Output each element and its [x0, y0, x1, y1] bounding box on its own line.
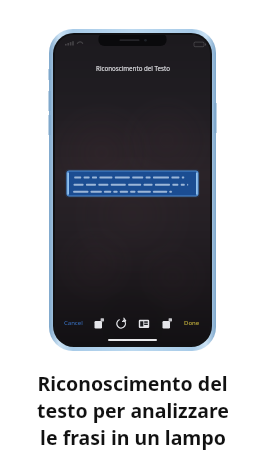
button[interactable]: Testo riconosciuto selezionato: [67, 171, 198, 196]
button[interactable]: Layout: [136, 315, 152, 331]
staticText: Done: [184, 319, 200, 327]
staticText: testo per analizzare: [37, 397, 229, 424]
button[interactable]: Ruota: [113, 315, 129, 331]
staticText: Riconoscimento del Testo: [96, 64, 170, 72]
button[interactable]: Flash: [91, 315, 107, 331]
staticText: Cancel: [64, 319, 83, 327]
button[interactable]: Cancel: [62, 317, 85, 329]
button[interactable]: Done: [182, 317, 202, 329]
button[interactable]: Copia: [159, 315, 175, 331]
staticText: le frasi in un lampo: [40, 424, 226, 451]
staticText: Riconoscimento del: [37, 370, 228, 397]
